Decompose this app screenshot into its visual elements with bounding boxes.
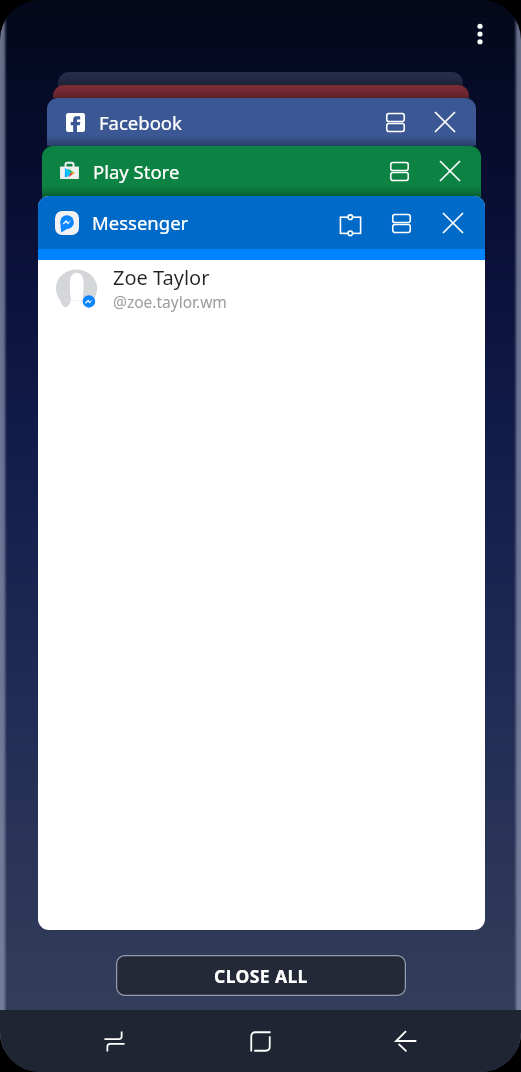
button[interactable]: Messenger (38, 196, 485, 930)
staticText: Messenger (92, 210, 189, 235)
button[interactable]: Recent app (53, 85, 469, 98)
button[interactable]: Close (428, 105, 462, 139)
button[interactable]: Back (333, 1010, 479, 1072)
staticText: Play Store (93, 159, 180, 184)
button[interactable]: CLOSE ALL (116, 955, 406, 996)
button[interactable]: Home (187, 1010, 333, 1072)
button[interactable]: Recent apps (42, 1010, 187, 1072)
staticText: Zoe Taylor (113, 264, 210, 291)
button[interactable]: More options (458, 12, 502, 56)
button[interactable]: Split screen (384, 206, 418, 240)
button[interactable]: Recent app (58, 72, 463, 86)
staticText: @zoe.taylor.wm (113, 291, 227, 312)
button[interactable]: Pop-up view (333, 206, 367, 240)
staticText: Facebook (99, 110, 182, 135)
button[interactable]: Zoe Taylor (38, 260, 485, 316)
button[interactable]: Facebook (47, 98, 476, 146)
button[interactable]: Play Store (42, 146, 481, 197)
button[interactable]: Split screen (382, 154, 416, 188)
staticText: CLOSE ALL (214, 964, 308, 988)
button[interactable]: Close (433, 154, 467, 188)
button[interactable]: Split screen (378, 105, 412, 139)
button[interactable]: Close (436, 206, 470, 240)
